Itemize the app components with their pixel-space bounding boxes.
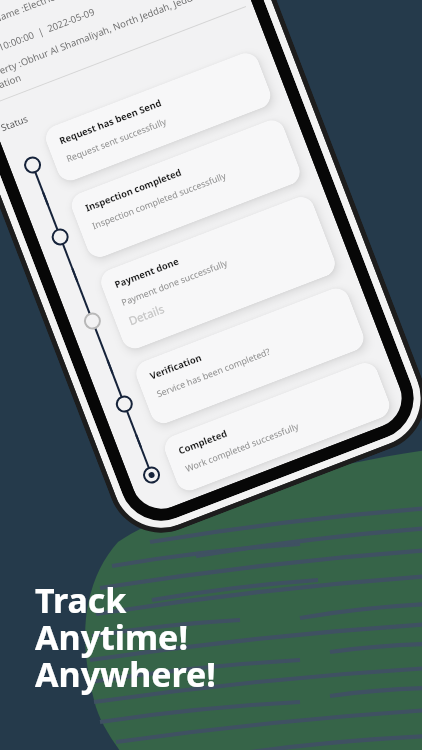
button[interactable]: Verification <box>132 284 368 427</box>
staticText: Inspection completed <box>83 166 183 214</box>
staticText: Track Anytime! Anywhere! <box>35 577 216 697</box>
staticText: Service has been completed? <box>155 345 272 399</box>
staticText: 10:00:00 | 2022-05-09 <box>0 5 97 54</box>
staticText: Verification <box>148 351 204 382</box>
button[interactable]: Request has been Send <box>42 49 274 185</box>
staticText: Status <box>0 112 30 134</box>
staticText: Work completed successfully <box>183 419 301 474</box>
staticText: Request sent successfully <box>64 114 168 164</box>
staticText: Request has been Send <box>57 96 164 147</box>
staticText: Inspection completed successfully <box>90 169 228 231</box>
staticText: Completed <box>176 426 230 457</box>
button[interactable]: Inspection completed <box>68 116 304 261</box>
staticText: Service Name :Electricity <box>0 0 66 38</box>
staticText: Details <box>126 301 167 329</box>
staticText: Property :Obhur Al Shamaliyah, North Jed… <box>0 0 222 97</box>
staticText: Payment done <box>113 254 181 291</box>
staticText: Payment done successfully <box>119 256 229 308</box>
button[interactable]: Payment done <box>97 193 339 353</box>
button[interactable]: Completed <box>161 359 393 494</box>
